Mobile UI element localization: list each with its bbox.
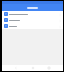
button[interactable]: Home xyxy=(31,66,35,70)
button[interactable]: More options xyxy=(2,17,63,23)
button[interactable]: More options xyxy=(2,23,63,29)
button[interactable]: Recent apps xyxy=(47,66,51,70)
button[interactable]: Back xyxy=(14,66,18,70)
button[interactable]: More options xyxy=(2,11,63,17)
